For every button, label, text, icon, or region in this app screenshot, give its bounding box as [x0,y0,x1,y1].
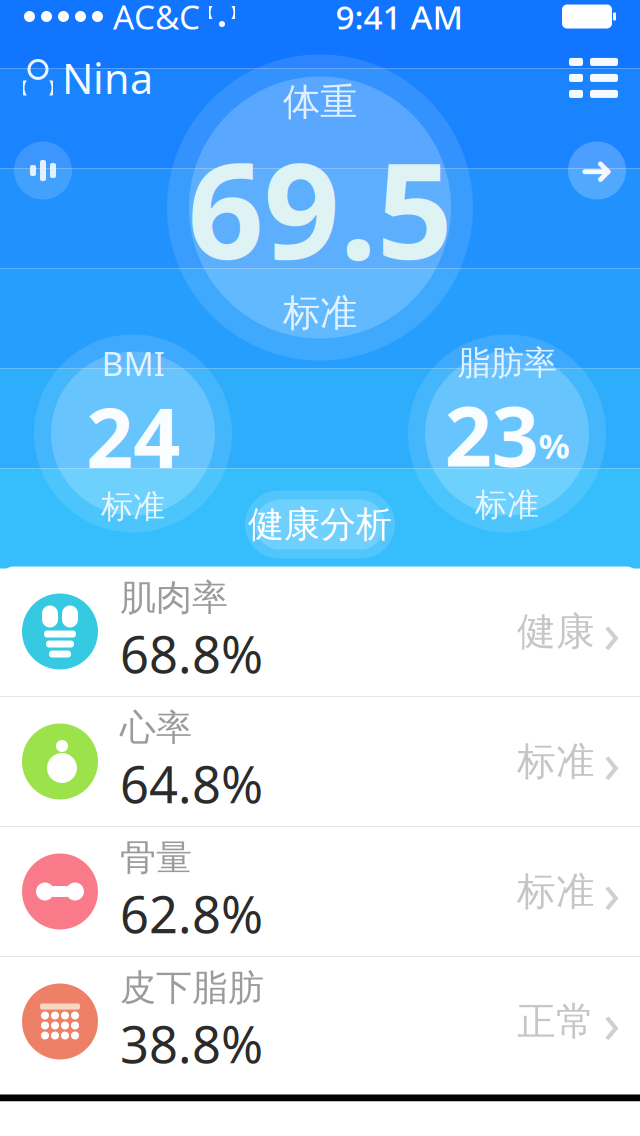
button[interactable]: 肌肉率 [0,567,640,696]
staticText: 心率 [120,706,192,750]
button[interactable]: Menu [547,44,640,112]
staticText: % [538,422,569,468]
staticText: ➜ [580,148,614,193]
staticText: 64.8% [120,750,263,817]
staticText: 肌肉率 [120,576,228,620]
staticText: 健康 [517,608,595,655]
button[interactable]: Statistics [14,141,72,199]
button[interactable]: 健康分析 [245,490,395,558]
button[interactable]: 骨量 [0,827,640,956]
staticText: 正常 [517,998,595,1045]
button[interactable]: 心率 [0,697,640,826]
staticText: AC&C [113,0,200,39]
staticText: 标准 [475,485,539,524]
staticText: Nina [62,50,153,105]
staticText: 38.8% [120,1010,263,1077]
staticText: › [603,724,620,799]
staticText: 标准 [283,290,357,336]
button[interactable]: Nina [0,42,169,113]
staticText: 骨量 [120,836,192,880]
staticText: 24 [86,381,180,491]
staticText: › [603,984,620,1059]
staticText: 标准 [517,738,595,785]
staticText: 9:41 AM [335,0,463,39]
staticText: 皮下脂肪 [120,966,264,1010]
staticText: BMI [101,341,164,385]
staticText: 23 [444,379,538,489]
staticText: 体重 [283,79,357,125]
staticText: 健康分析 [248,502,392,547]
staticText: 69.5 [187,119,452,296]
staticText: 68.8% [120,620,263,687]
button[interactable]: Share [568,141,626,199]
staticText: › [603,594,620,669]
staticText: 脂肪率 [457,342,556,383]
staticText: 标准 [517,868,595,915]
staticText: 62.8% [120,880,263,947]
staticText: 标准 [101,487,165,526]
button[interactable]: 皮下脂肪 [0,957,640,1086]
staticText: › [603,854,620,929]
